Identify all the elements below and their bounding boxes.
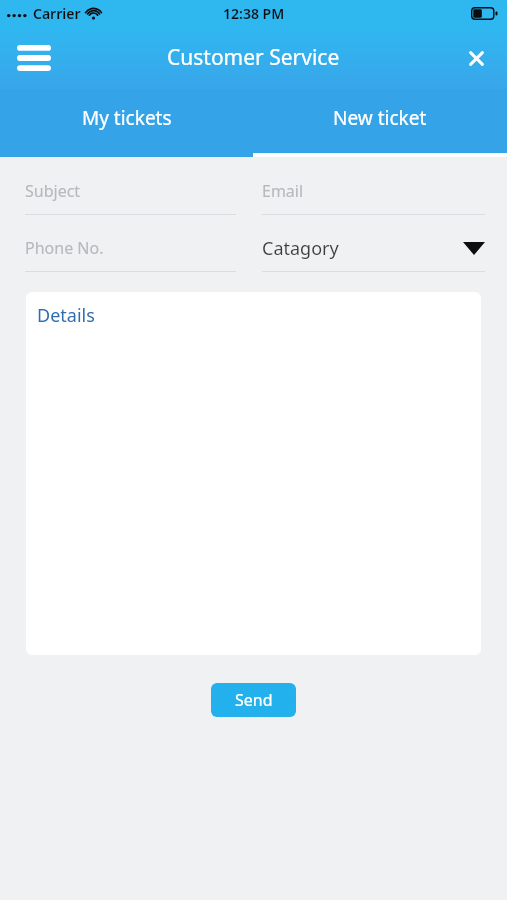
button[interactable]: Subject <box>25 176 236 215</box>
staticText: 12:38 PM <box>223 4 285 23</box>
button[interactable]: Close <box>454 36 498 80</box>
button[interactable]: Send <box>211 683 296 717</box>
button[interactable]: Catagory <box>262 233 485 272</box>
staticText: Customer Service <box>167 43 340 72</box>
staticText: Send <box>235 689 273 711</box>
button[interactable]: Phone No. <box>25 233 236 272</box>
staticText: My tickets <box>82 105 172 131</box>
staticText: Details <box>37 303 95 328</box>
button[interactable]: New ticket <box>253 89 507 157</box>
staticText: Carrier <box>33 4 81 23</box>
staticText: Catagory <box>262 236 339 261</box>
staticText: New ticket <box>333 105 427 131</box>
staticText: Email <box>262 180 304 202</box>
button[interactable]: Details <box>26 292 481 655</box>
staticText: Phone No. <box>25 237 104 259</box>
button[interactable]: My tickets <box>0 89 253 157</box>
button[interactable]: Email <box>262 176 485 215</box>
staticText: Subject <box>25 180 81 202</box>
button[interactable]: Menu <box>8 32 60 84</box>
